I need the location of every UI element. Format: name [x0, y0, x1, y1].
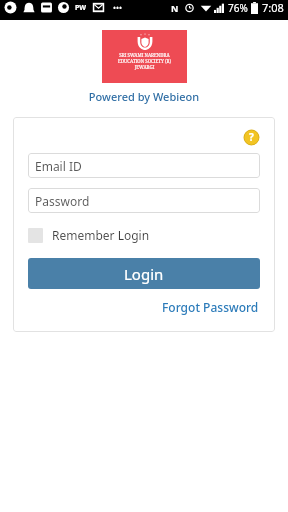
- button[interactable]: Forgot Password: [161, 297, 260, 317]
- staticText: Remember Login: [52, 227, 150, 243]
- staticText: 76%: [228, 1, 248, 15]
- button[interactable]: Email ID: [28, 153, 260, 178]
- staticText: •••: [113, 2, 123, 13]
- staticText: Login: [124, 264, 164, 284]
- staticText: N: [171, 2, 179, 14]
- staticText: JEWARGI: [102, 64, 187, 70]
- staticText: Email ID: [35, 158, 82, 174]
- staticText: SRI SWAMI NARENDRA: [102, 52, 187, 58]
- button[interactable]: Remember Login: [28, 225, 150, 245]
- staticText: Forgot Password: [162, 299, 259, 315]
- staticText: ?: [249, 130, 254, 144]
- button[interactable]: Password: [28, 188, 260, 213]
- staticText: EDUCATION SOCIETY (R): [102, 58, 187, 64]
- staticText: PW: [75, 3, 87, 13]
- staticText: 7:08: [262, 0, 284, 15]
- button[interactable]: Login: [28, 258, 260, 289]
- staticText: Powered by Webieon: [0, 89, 288, 104]
- staticText: Password: [35, 193, 90, 209]
- button[interactable]: Help: [242, 128, 260, 146]
